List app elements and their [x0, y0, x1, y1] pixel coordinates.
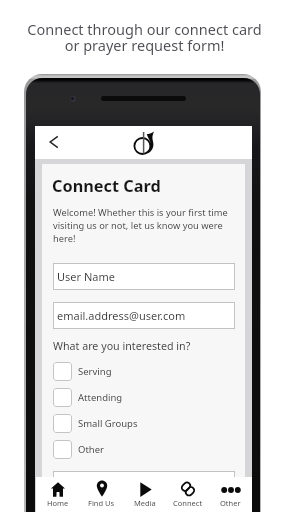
button[interactable]: email.address@user.com [53, 302, 235, 329]
button[interactable]: Home logo [132, 131, 156, 155]
button[interactable]: Small Groups [53, 414, 235, 433]
button[interactable]: Other [53, 440, 235, 459]
button[interactable]: Media [123, 477, 166, 512]
staticText: Serving [78, 365, 112, 378]
staticText: User Name [57, 269, 115, 284]
staticText: Attending [78, 391, 123, 404]
button[interactable]: Serving [53, 362, 235, 381]
button[interactable]: Attending [53, 388, 235, 407]
button[interactable] [53, 471, 235, 498]
button[interactable]: User Name [53, 263, 235, 290]
button[interactable]: Find Us [80, 477, 123, 512]
button[interactable]: Connect [166, 477, 209, 512]
staticText: Small Groups [78, 417, 138, 430]
staticText: Home [47, 498, 69, 508]
staticText: Welcome! Whether this is your first time… [53, 206, 237, 245]
staticText: Find Us [88, 498, 115, 508]
staticText: Connect through our connect card or pray… [27, 19, 262, 55]
staticText: What are you interested in? [53, 339, 191, 354]
staticText: Other [78, 443, 105, 456]
staticText: Connect Card [52, 175, 161, 197]
staticText: email.address@user.com [57, 308, 186, 323]
button[interactable]: Home [36, 477, 80, 512]
staticText: Connect [173, 498, 203, 508]
button[interactable]: Other [209, 477, 252, 512]
staticText: Other [220, 498, 241, 508]
staticText: Media [134, 498, 156, 508]
button[interactable]: Back [43, 131, 65, 153]
